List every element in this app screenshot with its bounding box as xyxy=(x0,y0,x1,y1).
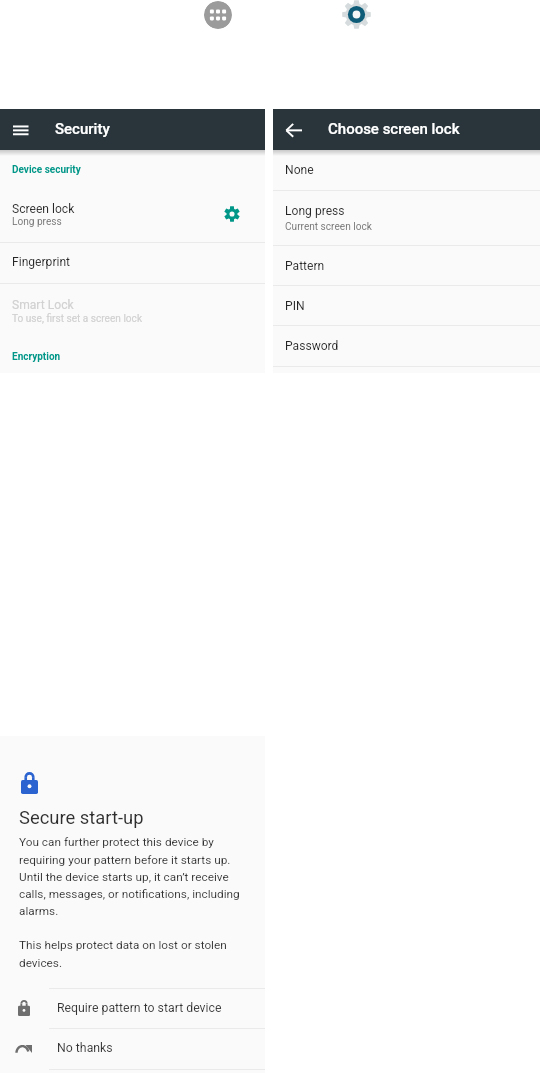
staticText: PIN xyxy=(285,299,305,313)
staticText: Smart Lock xyxy=(12,298,74,312)
staticText: Screen lock xyxy=(12,202,75,216)
button[interactable]: Settings xyxy=(342,0,371,29)
button[interactable]: Navigate up xyxy=(286,121,302,139)
staticText: Password xyxy=(285,339,339,353)
staticText: Security xyxy=(55,120,110,138)
button[interactable]: Fingerprint xyxy=(0,243,265,283)
staticText: This helps protect data on lost or stole… xyxy=(19,938,227,969)
button[interactable]: Screen lock xyxy=(0,185,265,242)
staticText: Encryption xyxy=(12,351,61,363)
button[interactable]: No thanks xyxy=(0,1029,265,1069)
staticText: Secure start-up xyxy=(19,807,144,829)
staticText: To use, first set a screen lock xyxy=(12,313,143,325)
staticText: None xyxy=(285,163,314,177)
button[interactable]: Require pattern to start device xyxy=(0,989,265,1028)
staticText: No thanks xyxy=(57,1041,113,1055)
button[interactable]: All apps xyxy=(204,1,232,29)
button[interactable]: Long press xyxy=(273,191,540,245)
staticText: Fingerprint xyxy=(12,255,71,269)
staticText: Device security xyxy=(12,164,81,176)
staticText: Choose screen lock xyxy=(328,120,460,138)
button[interactable]: Password xyxy=(273,326,540,366)
button[interactable]: None xyxy=(273,150,540,190)
button[interactable]: Pattern xyxy=(273,246,540,285)
staticText: You can further protect this device by r… xyxy=(19,835,240,917)
button[interactable]: Open navigation menu xyxy=(13,121,29,139)
staticText: Pattern xyxy=(285,259,325,273)
button[interactable]: PIN xyxy=(273,286,540,325)
button[interactable]: Screen lock settings xyxy=(224,206,240,222)
staticText: Long press xyxy=(285,204,345,218)
staticText: Require pattern to start device xyxy=(57,1001,222,1015)
staticText: Current screen lock xyxy=(285,221,372,233)
staticText: Long press xyxy=(12,216,62,228)
